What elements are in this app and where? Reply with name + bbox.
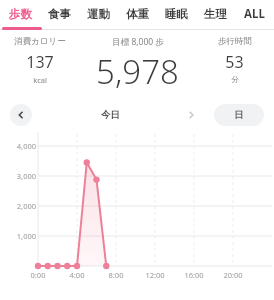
button[interactable]: 睡眠 — [157, 0, 196, 27]
staticText: 生理 — [204, 7, 227, 21]
button[interactable]: 歩数 — [0, 0, 40, 27]
button[interactable]: ALL — [235, 0, 274, 27]
staticText: 20:00 — [219, 270, 247, 280]
button[interactable]: 前の日 — [10, 104, 32, 126]
button[interactable]: 体重 — [118, 0, 157, 27]
staticText: 137 — [26, 51, 54, 73]
staticText: 今日 — [101, 109, 120, 121]
button[interactable]: 今日 — [101, 109, 120, 121]
staticText: 53 — [225, 51, 244, 73]
staticText: 目標 8,000 歩 — [112, 36, 164, 48]
staticText: ALL — [244, 6, 265, 22]
staticText: 8:00 — [102, 270, 130, 280]
staticText: 4:00 — [63, 270, 91, 280]
button[interactable]: 生理 — [196, 0, 235, 27]
staticText: 12:00 — [141, 270, 169, 280]
staticText: 食事 — [48, 7, 71, 21]
staticText: 消費カロリー — [14, 36, 66, 47]
button[interactable]: 食事 — [40, 0, 79, 27]
staticText: 歩行時間 — [218, 36, 252, 47]
staticText: 16:00 — [180, 270, 208, 280]
staticText: 5,978 — [96, 49, 179, 94]
staticText: 運動 — [87, 7, 110, 21]
button[interactable]: 次の日 — [180, 104, 202, 126]
staticText: 日 — [234, 109, 244, 121]
button[interactable]: 日 — [214, 104, 264, 126]
staticText: 1,000 — [4, 231, 36, 241]
staticText: 4,000 — [4, 141, 36, 151]
staticText: 睡眠 — [165, 7, 188, 21]
staticText: 歩数 — [9, 7, 32, 21]
staticText: 3,000 — [4, 171, 36, 181]
staticText: 分 — [231, 75, 239, 84]
button[interactable]: 運動 — [79, 0, 118, 27]
staticText: 0:00 — [24, 270, 52, 280]
staticText: 体重 — [126, 7, 149, 21]
staticText: kcal — [33, 75, 47, 85]
staticText: 2,000 — [4, 201, 36, 211]
